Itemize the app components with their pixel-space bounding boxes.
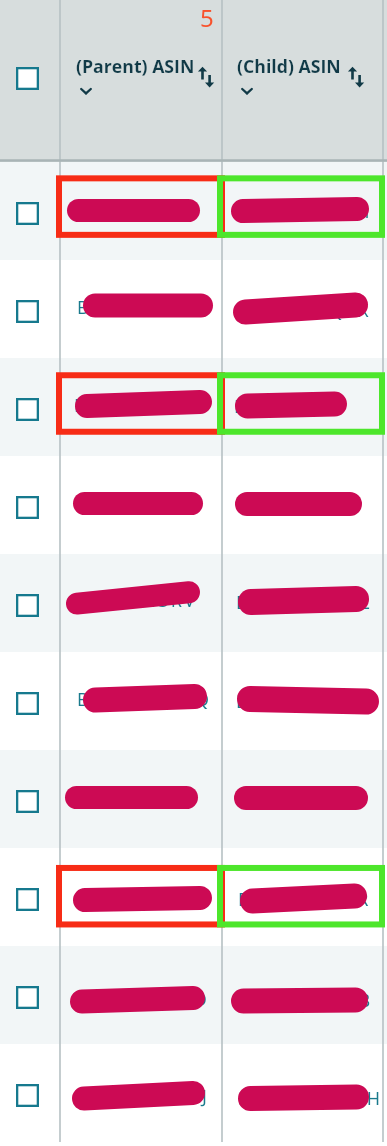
staticText: B0BTL8K2Z <box>242 493 357 518</box>
staticText: B0C8RM4WVH <box>238 1086 383 1111</box>
staticText: B0CFH3M8X <box>73 786 197 811</box>
staticText: 5 <box>200 1 214 34</box>
staticText: B09QF4XH <box>234 394 342 419</box>
button[interactable]: Expand column menu <box>238 83 254 95</box>
staticText: B0BQ5VT7ZR <box>238 887 371 912</box>
button[interactable]: Sort <box>196 64 218 90</box>
staticText: B0CJ4MPLRH <box>240 199 372 224</box>
button[interactable]: Select row <box>16 888 39 911</box>
staticText: B0D7QJ5NSQ <box>77 687 212 712</box>
button[interactable]: Expand column menu <box>77 83 93 95</box>
button[interactable]: (Child) ASIN <box>237 54 341 78</box>
button[interactable]: B0BN3RV <box>0 554 387 652</box>
staticText: B0BQ5VT7ZN <box>74 888 210 913</box>
button[interactable]: B0CN2KQ9FD <box>0 946 387 1044</box>
button[interactable]: Select row <box>16 594 39 617</box>
staticText: B0CFH3M8Y <box>241 787 364 812</box>
staticText: B0CJ4MPLR <box>76 199 193 224</box>
staticText: B0C2J9WKLP <box>74 393 204 418</box>
staticText: B0BKN7LQ2V <box>77 295 213 320</box>
button[interactable]: B0D7QJ5NSQ <box>0 652 387 750</box>
button[interactable]: Select row <box>16 986 39 1009</box>
button[interactable]: Select all rows <box>16 67 39 90</box>
staticText: B0BN3RV <box>102 588 198 613</box>
button[interactable]: Select row <box>16 398 39 421</box>
staticText: B0C8RM4WTJ <box>74 1084 210 1109</box>
staticText: B0CN2KQ9FD <box>72 987 209 1012</box>
button[interactable]: Select row <box>16 692 39 715</box>
staticText: B0D7QJ5NTC <box>236 689 368 714</box>
staticText: B0BKN7LQ3X <box>236 298 371 323</box>
button[interactable]: (Parent) ASIN <box>76 54 195 78</box>
button[interactable]: B0CFH3M8X <box>0 750 387 848</box>
staticText: B0CN2KQ9GB <box>233 988 373 1013</box>
button[interactable]: B0BQ5VT7ZN <box>0 848 387 946</box>
button[interactable]: Select row <box>16 790 39 813</box>
button[interactable]: B0C8RM4WTJ <box>0 1044 387 1142</box>
staticText: (Child) ASIN <box>237 54 341 78</box>
staticText: B0BN3RVXQ2 <box>236 590 373 615</box>
button[interactable]: B0BTL8K2W <box>0 456 387 554</box>
button[interactable]: Select row <box>16 300 39 323</box>
button[interactable]: Select row <box>16 1084 39 1107</box>
staticText: (Parent) ASIN <box>76 54 195 78</box>
button[interactable]: B0CJ4MPLR <box>0 162 387 260</box>
button[interactable]: Select row <box>16 202 39 225</box>
button[interactable]: B0BKN7LQ2V <box>0 260 387 358</box>
button[interactable]: Select row <box>16 496 39 519</box>
staticText: B0BTL8K2W <box>80 492 202 517</box>
button[interactable]: B0C2J9WKLP <box>0 358 387 456</box>
button[interactable]: Sort <box>346 64 368 90</box>
